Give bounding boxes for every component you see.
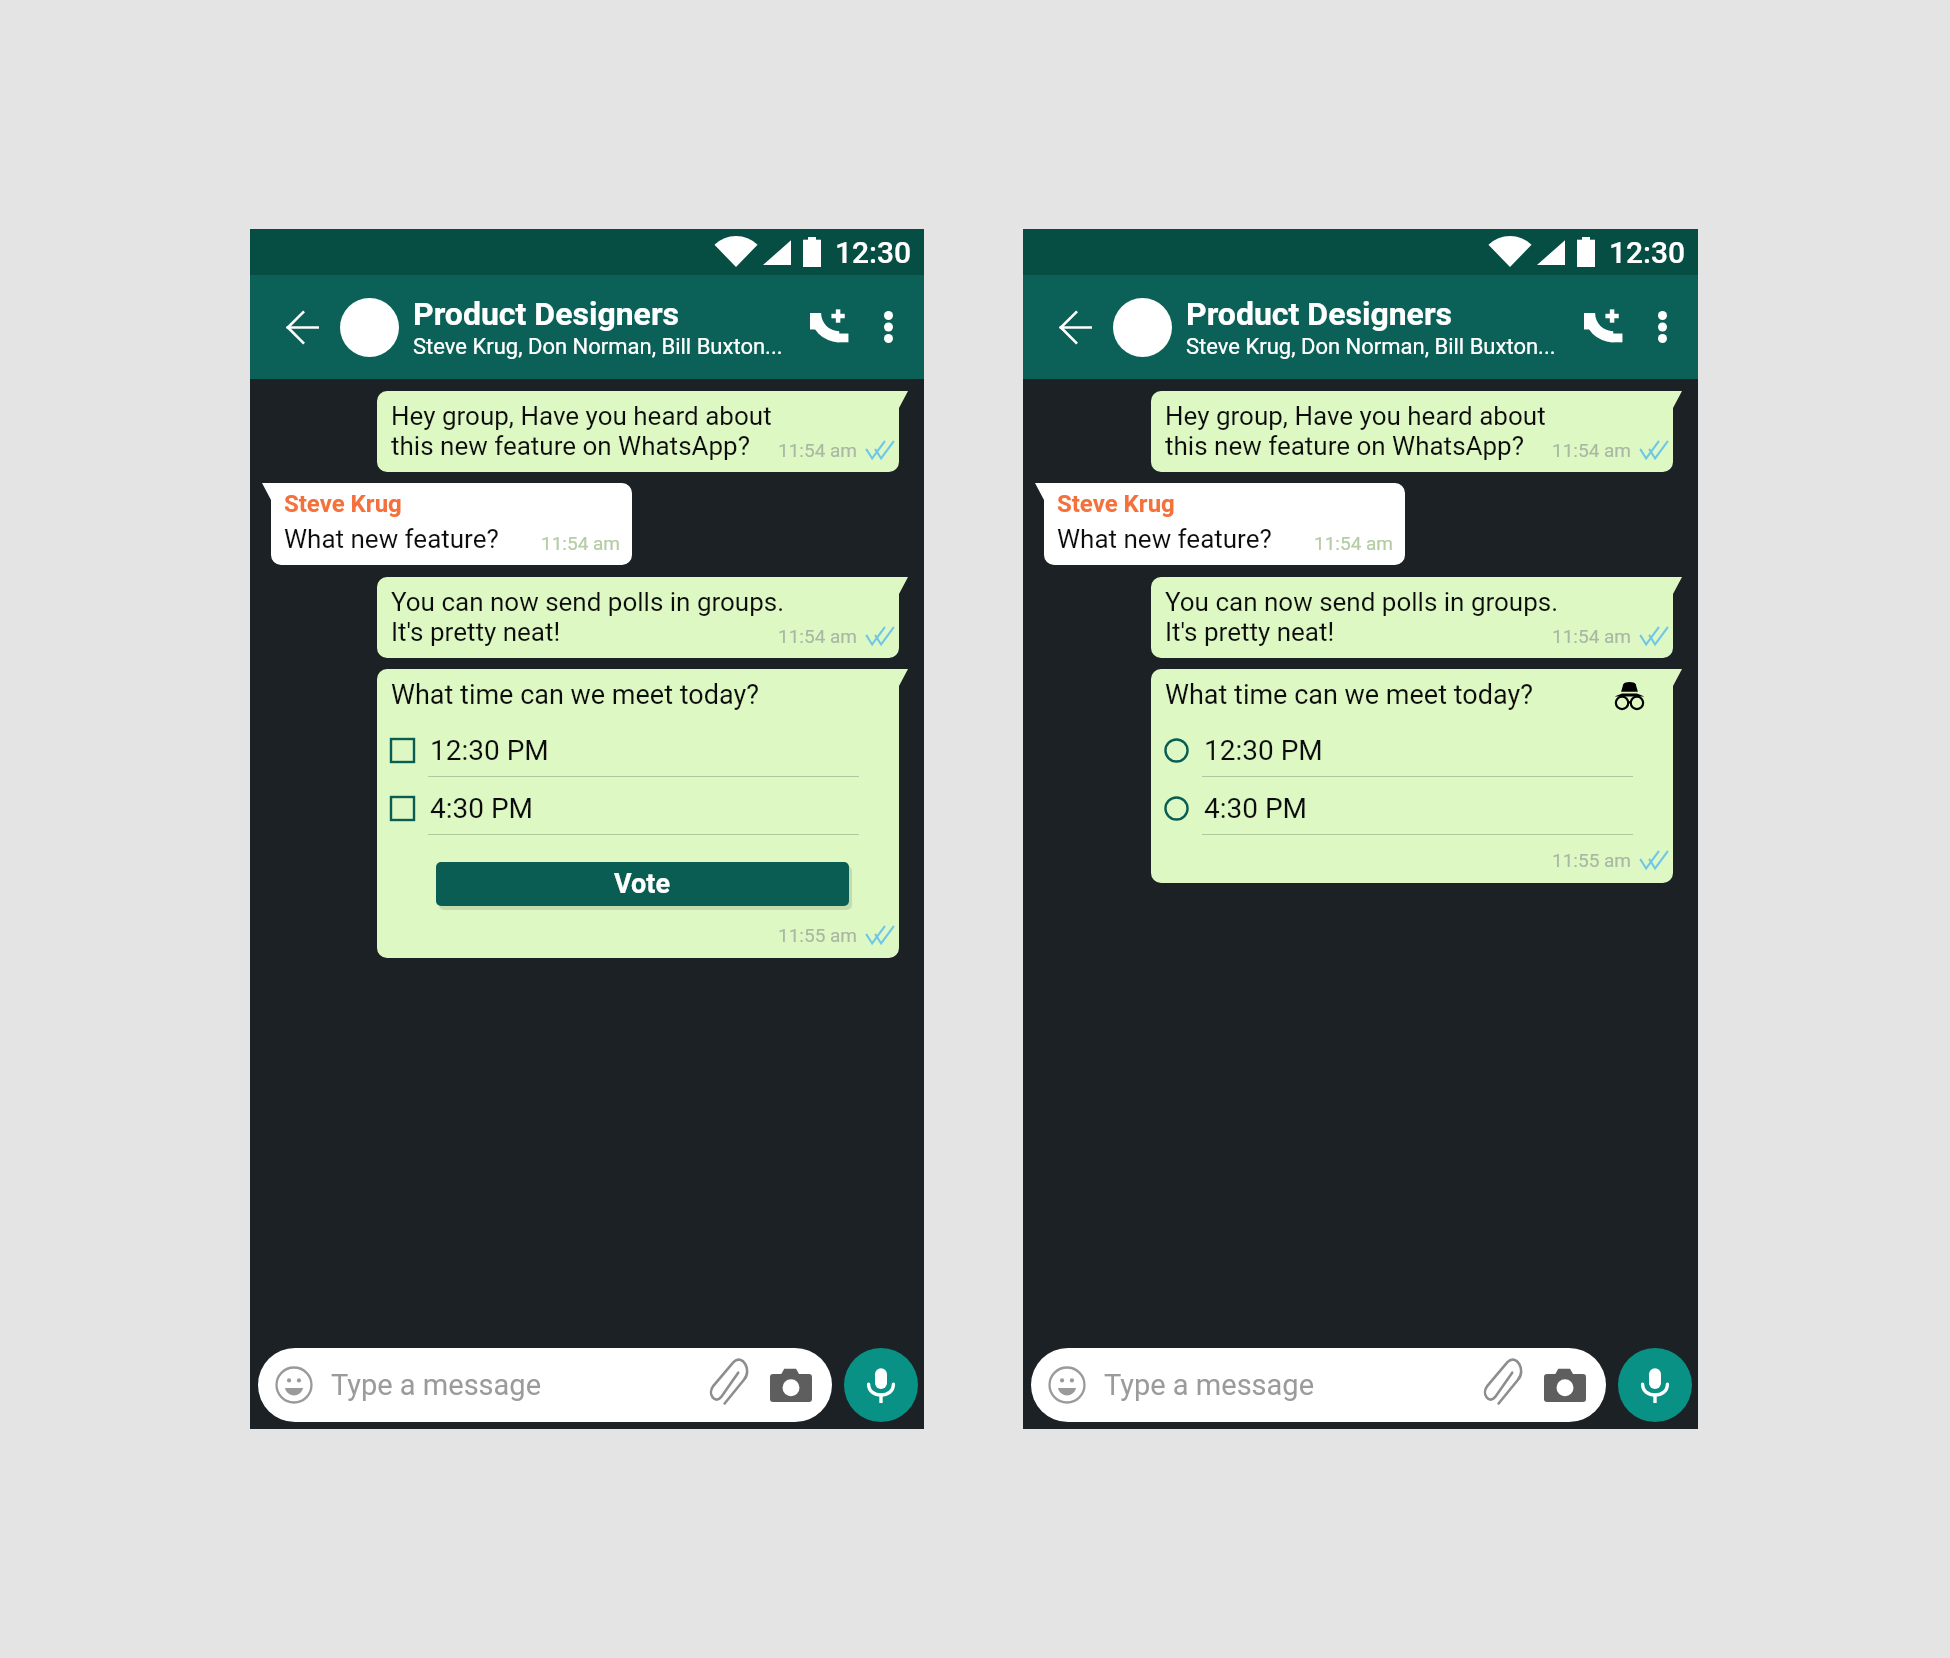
button[interactable]: Type a message xyxy=(258,1348,832,1422)
staticText: Hey group, Have you heard about xyxy=(1165,401,1546,431)
button[interactable] xyxy=(1165,797,1188,820)
staticText: 4:30 PM xyxy=(1204,792,1308,825)
staticText: 11:54 am xyxy=(778,439,858,461)
staticText: Type a message xyxy=(331,1368,542,1402)
staticText: 12:30 xyxy=(835,235,912,270)
button[interactable]: Back xyxy=(1047,299,1103,355)
button[interactable]: Call xyxy=(797,296,859,358)
staticText: this new feature on WhatsApp? xyxy=(1165,431,1524,461)
button[interactable]: Camera xyxy=(768,1362,814,1408)
staticText: Vote xyxy=(614,868,671,900)
staticText: 12:30 PM xyxy=(430,734,549,767)
button[interactable] xyxy=(391,797,414,820)
button[interactable]: More options xyxy=(859,298,917,356)
button[interactable]: Voice message xyxy=(1618,1348,1692,1422)
staticText: What time can we meet today? xyxy=(1165,679,1533,711)
staticText: Steve Krug xyxy=(284,490,402,518)
staticText: What time can we meet today? xyxy=(391,679,759,711)
button[interactable]: Voice message xyxy=(844,1348,918,1422)
staticText: 11:54 am xyxy=(1552,625,1632,647)
button[interactable]: Group photo xyxy=(1113,298,1172,357)
button[interactable]: Group photo xyxy=(340,298,399,357)
staticText: It's pretty neat! xyxy=(391,617,561,647)
button[interactable]: Attach xyxy=(706,1363,750,1407)
button[interactable] xyxy=(391,739,414,762)
button[interactable]: Attach xyxy=(1480,1363,1524,1407)
button[interactable] xyxy=(1165,739,1188,762)
staticText: 11:54 am xyxy=(1552,439,1632,461)
button[interactable]: Type a message xyxy=(1031,1348,1606,1422)
button[interactable]: Camera xyxy=(1542,1362,1588,1408)
staticText: 11:55 am xyxy=(1552,849,1632,871)
button[interactable]: More options xyxy=(1633,298,1691,356)
staticText: 11:55 am xyxy=(778,924,858,946)
staticText: Hey group, Have you heard about xyxy=(391,401,772,431)
staticText: Steve Krug xyxy=(1057,490,1175,518)
button[interactable]: Back xyxy=(274,299,330,355)
staticText: 12:30 xyxy=(1609,235,1686,270)
staticText: It's pretty neat! xyxy=(1165,617,1335,647)
staticText: 4:30 PM xyxy=(430,792,534,825)
staticText: Type a message xyxy=(1104,1368,1315,1402)
button[interactable]: Vote xyxy=(436,862,849,906)
staticText: Steve Krug, Don Norman, Bill Buxton... xyxy=(1186,334,1556,360)
staticText: You can now send polls in groups. xyxy=(391,587,785,617)
staticText: 11:54 am xyxy=(1314,532,1394,554)
staticText: You can now send polls in groups. xyxy=(1165,587,1559,617)
staticText: 11:54 am xyxy=(541,532,621,554)
staticText: What new feature? xyxy=(1057,524,1272,554)
staticText: Product Designers xyxy=(413,295,680,333)
staticText: 11:54 am xyxy=(778,625,858,647)
button[interactable]: Call xyxy=(1571,296,1633,358)
staticText: Steve Krug, Don Norman, Bill Buxton... xyxy=(413,334,783,360)
staticText: What new feature? xyxy=(284,524,499,554)
staticText: this new feature on WhatsApp? xyxy=(391,431,750,461)
staticText: Product Designers xyxy=(1186,295,1453,333)
staticText: 12:30 PM xyxy=(1204,734,1323,767)
